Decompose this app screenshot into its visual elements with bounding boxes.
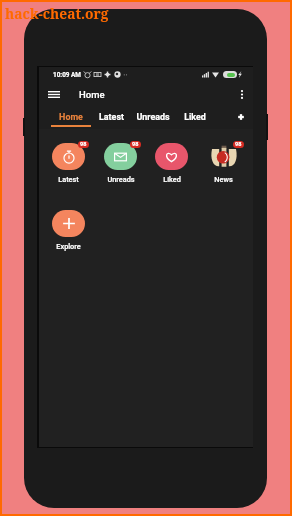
button[interactable]: Liked [178, 107, 212, 129]
button[interactable]: Menu [43, 82, 65, 107]
staticText: 10:09 AM [53, 71, 81, 79]
staticText: 98 [80, 141, 87, 148]
button[interactable]: 98 [46, 140, 91, 187]
staticText: Latest [99, 112, 124, 122]
staticText: Home [79, 89, 105, 100]
button[interactable]: Liked [149, 140, 194, 187]
staticText: Latest [58, 175, 79, 184]
button[interactable]: Add [233, 109, 249, 125]
staticText: Unreads [136, 112, 170, 122]
button[interactable]: 98 [98, 140, 143, 187]
staticText: hack-cheat.org [5, 4, 109, 23]
button[interactable]: More options [233, 82, 251, 107]
button[interactable]: Latest [93, 107, 129, 129]
staticText: 98 [235, 141, 242, 148]
button[interactable]: 98 [201, 140, 246, 187]
staticText: 98 [132, 141, 139, 148]
staticText: Explore [56, 242, 81, 251]
button[interactable]: Home [51, 107, 91, 129]
staticText: Liked [184, 112, 206, 122]
staticText: Liked [163, 175, 181, 184]
staticText: Home [59, 112, 83, 122]
button[interactable]: Explore [46, 207, 91, 254]
button[interactable]: Unreads [132, 107, 174, 129]
staticText: News [214, 175, 233, 184]
staticText: Unreads [107, 175, 135, 184]
